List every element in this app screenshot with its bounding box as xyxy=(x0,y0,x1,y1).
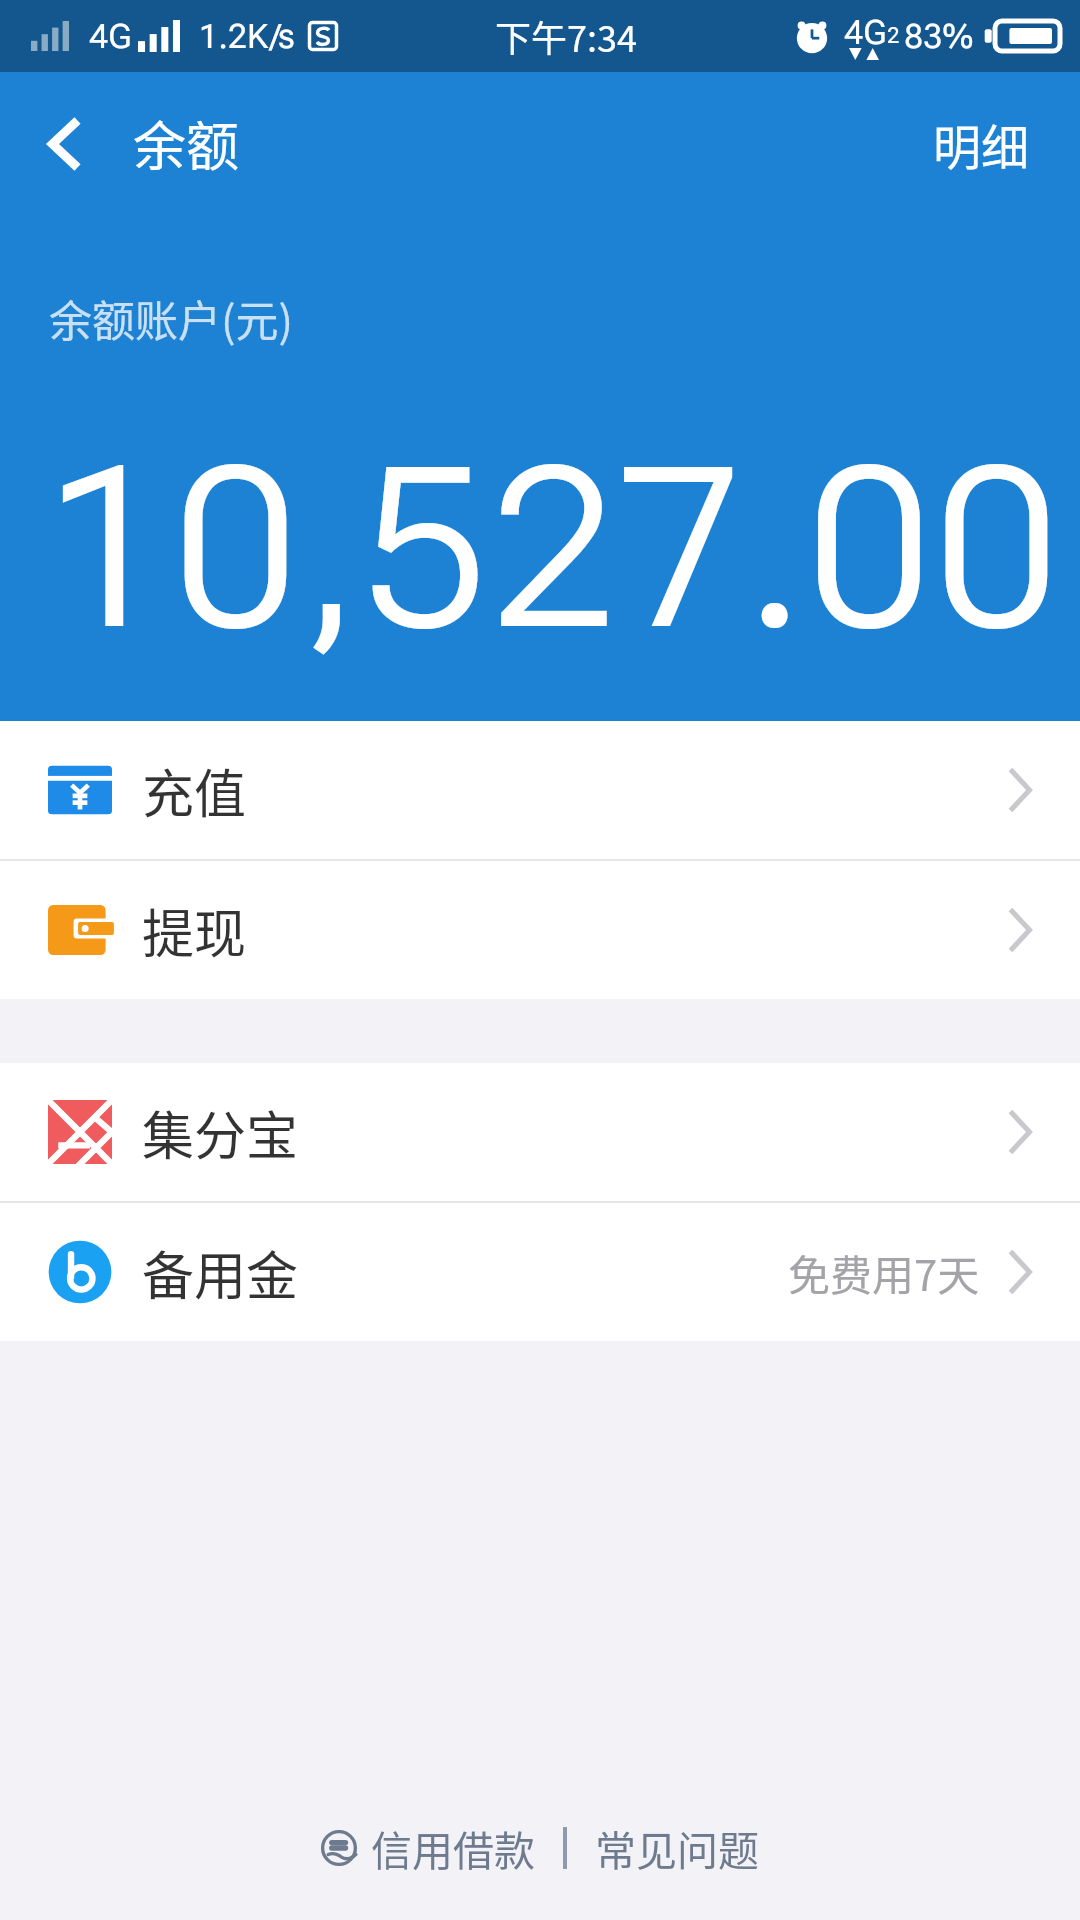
staticText: 提现 xyxy=(142,893,247,968)
button[interactable]: 明细 xyxy=(903,72,1080,215)
staticText: 集分宝 xyxy=(142,1095,299,1170)
button[interactable]: 信用借款 xyxy=(317,1818,539,1877)
button[interactable]: 常见问题 xyxy=(591,1818,763,1877)
staticText: 充值 xyxy=(142,753,247,828)
staticText: 4G xyxy=(89,16,132,56)
staticText: 4G xyxy=(844,12,887,52)
button[interactable]: 返回 xyxy=(0,72,133,215)
button[interactable]: 提现 xyxy=(0,861,1080,999)
button[interactable]: 充值 xyxy=(0,721,1080,859)
staticText: 免费用7天 xyxy=(788,1242,980,1303)
staticText: 常见问题 xyxy=(595,1818,759,1877)
staticText: 信用借款 xyxy=(371,1818,535,1877)
staticText: 明细 xyxy=(933,109,1030,179)
button[interactable]: 备用金 xyxy=(0,1203,1080,1341)
staticText: 83% xyxy=(904,16,974,56)
staticText: 10,527.00 xyxy=(13,419,1080,680)
button[interactable]: 集分宝 xyxy=(0,1063,1080,1201)
staticText: 余额 xyxy=(133,105,239,182)
staticText: 2 xyxy=(887,23,900,49)
staticText: 1.2K/s xyxy=(199,16,295,56)
staticText: 下午7:34 xyxy=(495,10,637,62)
staticText: 备用金 xyxy=(142,1235,299,1310)
staticText: 余额账户(元) xyxy=(49,287,294,349)
